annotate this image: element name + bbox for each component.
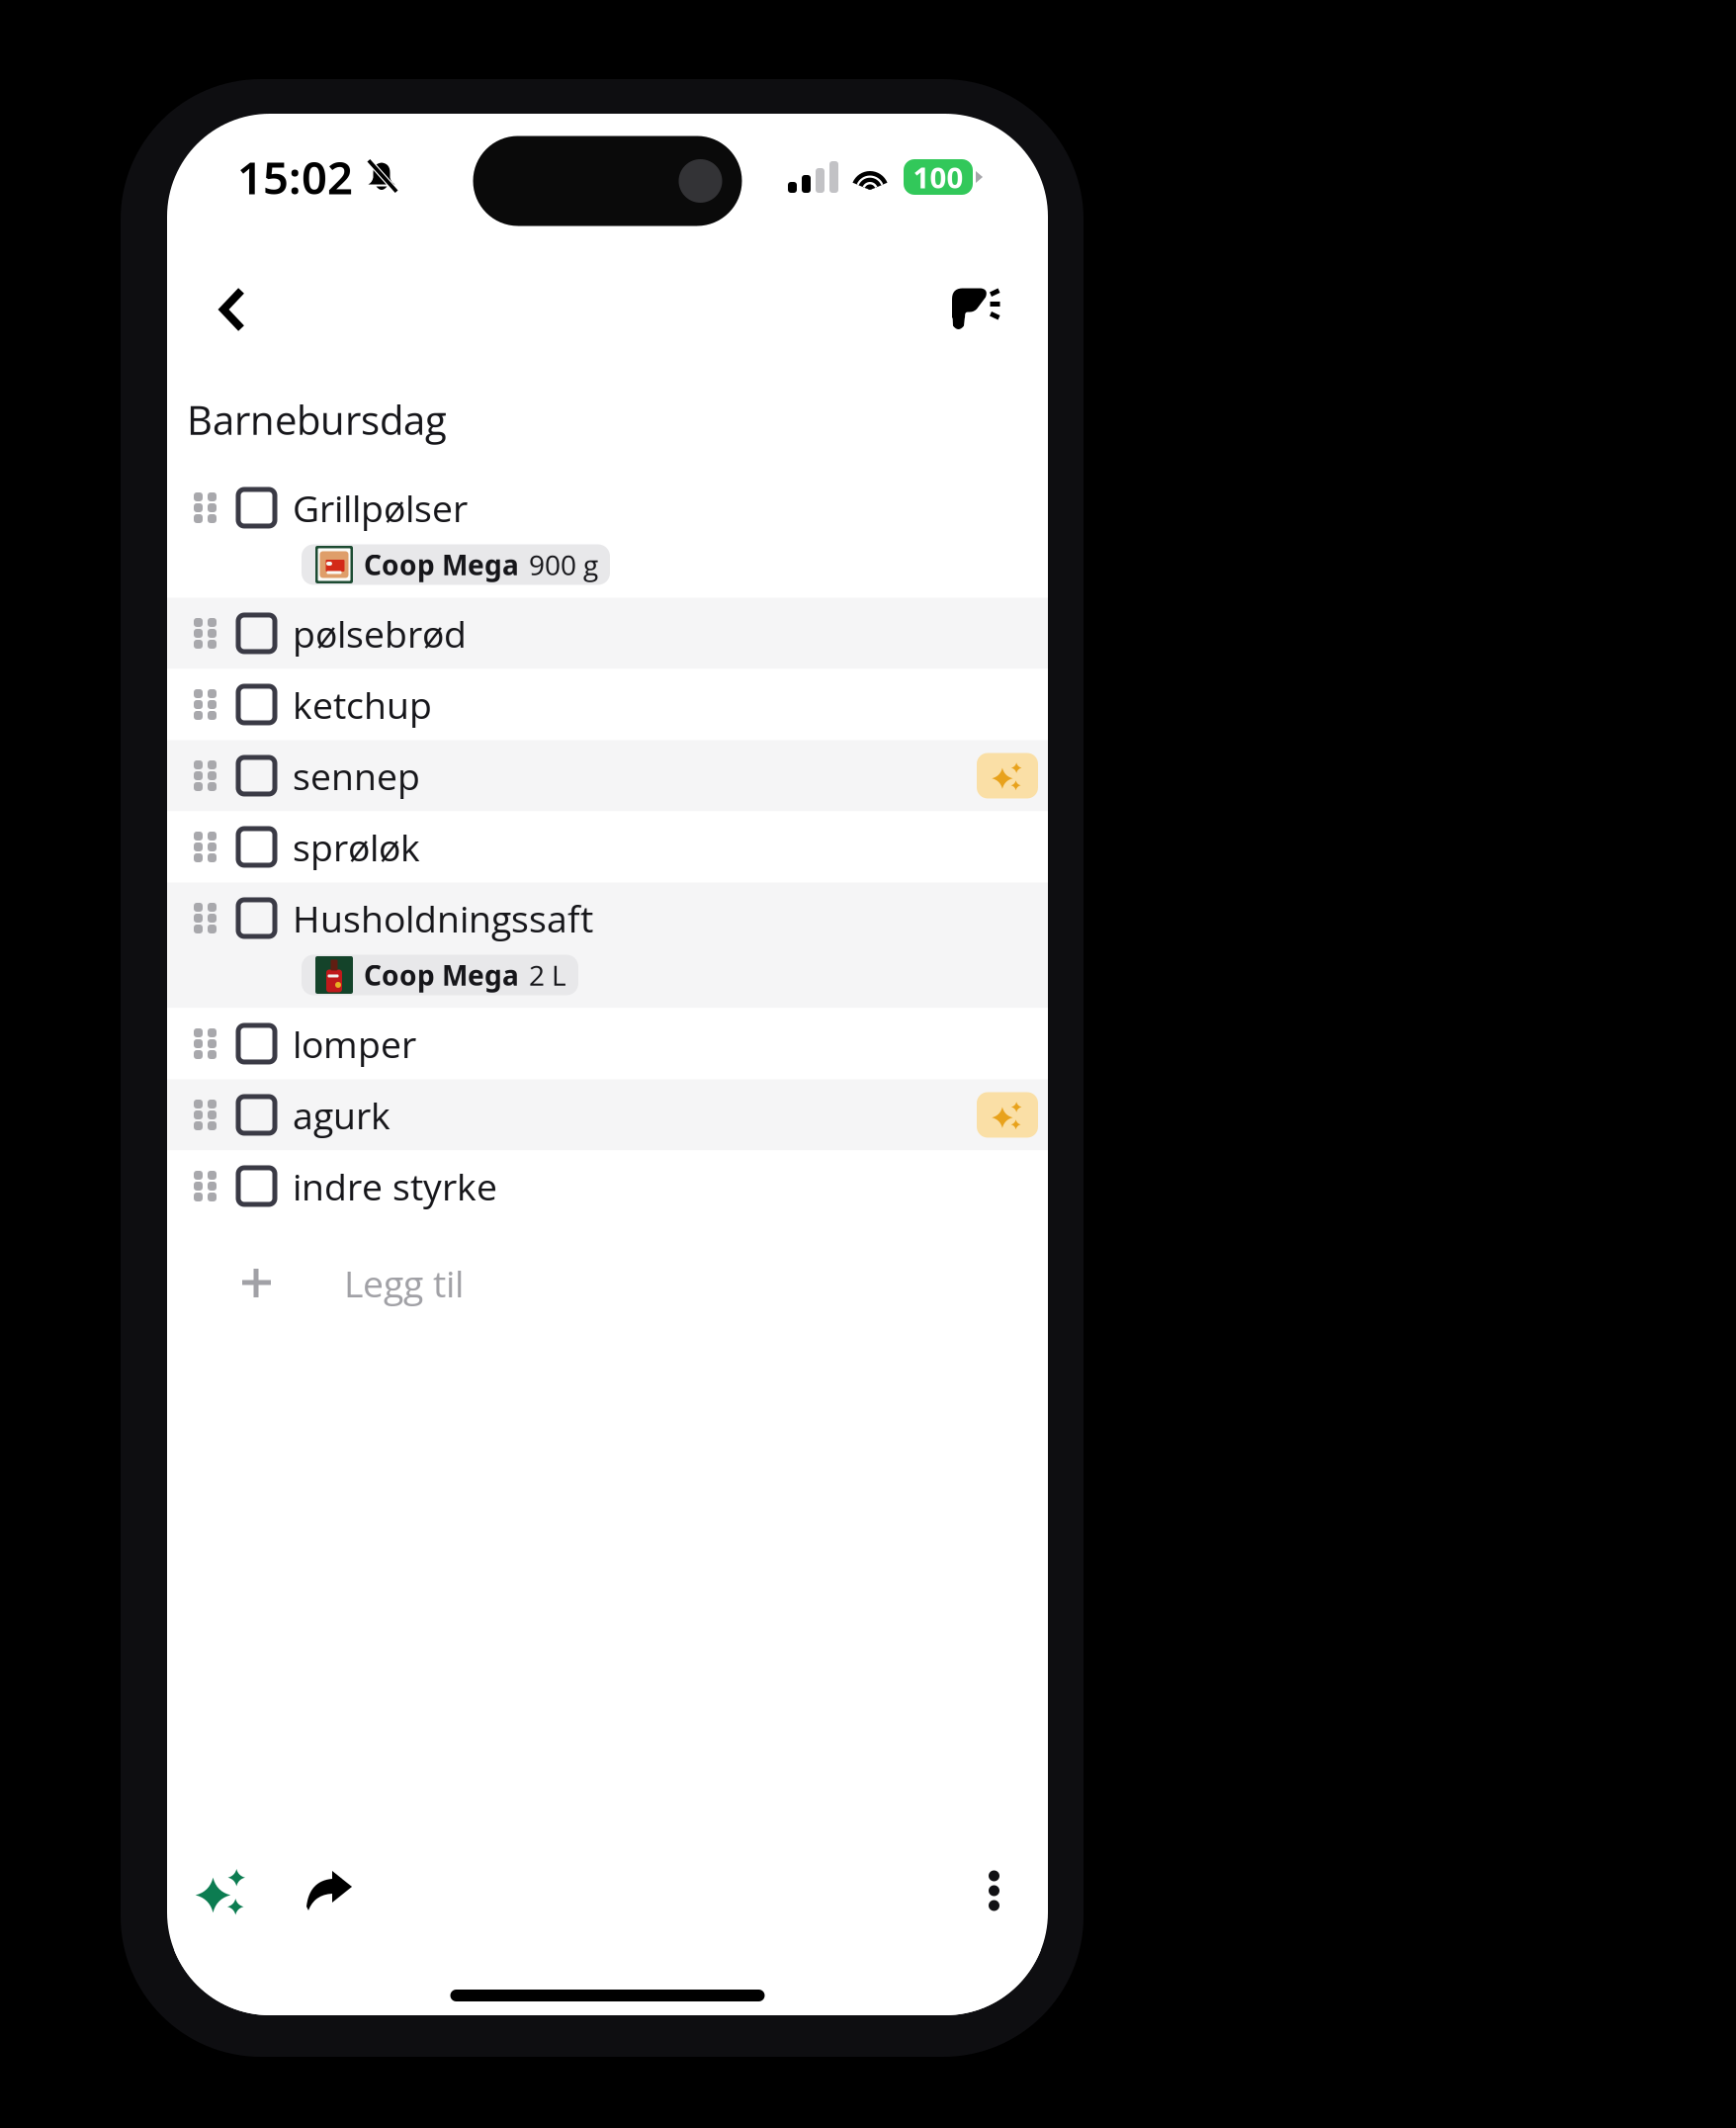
button[interactable]: sennep	[167, 740, 1048, 811]
button[interactable]: Share	[276, 1845, 378, 1936]
staticText: 100	[913, 157, 963, 197]
button[interactable]: Suggestions	[167, 1840, 276, 1941]
button[interactable]: Scan barcode	[922, 265, 1048, 355]
staticText: Barnebursdag	[187, 393, 447, 446]
staticText: Coop Mega	[364, 956, 519, 994]
button[interactable]: More options	[949, 1847, 1048, 1935]
staticText: sennep	[293, 751, 420, 801]
staticText: 900 g	[529, 546, 598, 583]
button[interactable]: indre styrke	[167, 1151, 1048, 1222]
staticText: Legg til	[344, 1258, 464, 1308]
button[interactable]: Back	[167, 262, 276, 357]
staticText: ketchup	[293, 679, 432, 730]
staticText: sprøløk	[293, 822, 420, 872]
staticText: indre styrke	[293, 1161, 497, 1211]
button[interactable]: Husholdningssaft	[167, 883, 1048, 1008]
staticText: 15:02	[237, 146, 353, 207]
button[interactable]: Coop Mega	[302, 544, 610, 585]
button[interactable]: lomper	[167, 1008, 1048, 1079]
staticText: pølsebrød	[293, 608, 467, 658]
button[interactable]: pølsebrød	[167, 598, 1048, 669]
button[interactable]: sprøløk	[167, 811, 1048, 883]
button[interactable]: ketchup	[167, 669, 1048, 740]
button[interactable]: Legg til	[167, 1222, 1048, 1344]
staticText: Husholdningssaft	[293, 893, 593, 943]
staticText: agurk	[293, 1090, 391, 1140]
staticText: lomper	[293, 1019, 416, 1069]
button[interactable]: Grillpølser	[167, 472, 1048, 598]
button[interactable]: Coop Mega	[302, 955, 578, 995]
button[interactable]: agurk	[167, 1079, 1048, 1151]
staticText: Coop Mega	[364, 546, 519, 583]
staticText: 2 L	[529, 956, 566, 994]
staticText: Grillpølser	[293, 483, 468, 533]
